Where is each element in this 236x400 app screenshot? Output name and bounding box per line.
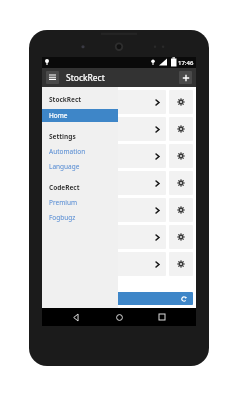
button[interactable]: Automation (42, 147, 118, 156)
button[interactable]: NASDAQ (45, 117, 166, 141)
button[interactable]: Back (67, 308, 85, 326)
button[interactable]: Settings for NYSE (169, 171, 193, 195)
button[interactable]: XETRA (45, 225, 166, 249)
button[interactable]: Fogbugz (42, 213, 118, 222)
button[interactable]: Settings for NASDAQ (169, 90, 193, 114)
button[interactable]: Open navigation drawer (46, 71, 59, 84)
staticText: NASDAQ (49, 95, 78, 105)
staticText: Fogbugz (49, 213, 76, 222)
staticText: Automation (49, 147, 86, 156)
button[interactable]: NASDAQ (45, 90, 166, 114)
button[interactable]: Home (42, 109, 118, 122)
button[interactable]: NYSE (45, 171, 166, 195)
button[interactable]: Refresh (45, 292, 193, 305)
button[interactable]: Settings for NASDAQ (169, 117, 193, 141)
button[interactable]: NASDAQ (45, 144, 166, 168)
staticText: Settings (49, 132, 76, 141)
button[interactable]: Home (110, 308, 128, 326)
button[interactable]: Settings for NASDAQ Gl... (169, 252, 193, 276)
button[interactable]: Add (179, 71, 192, 84)
staticText: StockRect (49, 95, 82, 104)
staticText: NASDAQ (49, 149, 78, 159)
staticText: Premium (49, 198, 78, 207)
staticText: Language (49, 162, 80, 171)
button[interactable]: NASDAQ (45, 198, 166, 222)
staticText: CodeRect (49, 183, 80, 192)
staticText: Home (49, 111, 68, 120)
staticText: NYSE (49, 178, 67, 188)
staticText: StockRect (66, 72, 105, 84)
button[interactable]: NASDAQ Gl... (45, 252, 166, 276)
staticText: 17:46 (178, 59, 194, 67)
button[interactable]: Settings for NASDAQ (169, 144, 193, 168)
button[interactable]: Settings for NASDAQ (169, 198, 193, 222)
button[interactable]: Language (42, 162, 118, 171)
button[interactable]: Premium (42, 198, 118, 207)
button[interactable]: Recent apps (153, 308, 171, 326)
button[interactable]: Settings for XETRA (169, 225, 193, 249)
staticText: Advanced Micro Devices, Inc. (49, 105, 98, 110)
